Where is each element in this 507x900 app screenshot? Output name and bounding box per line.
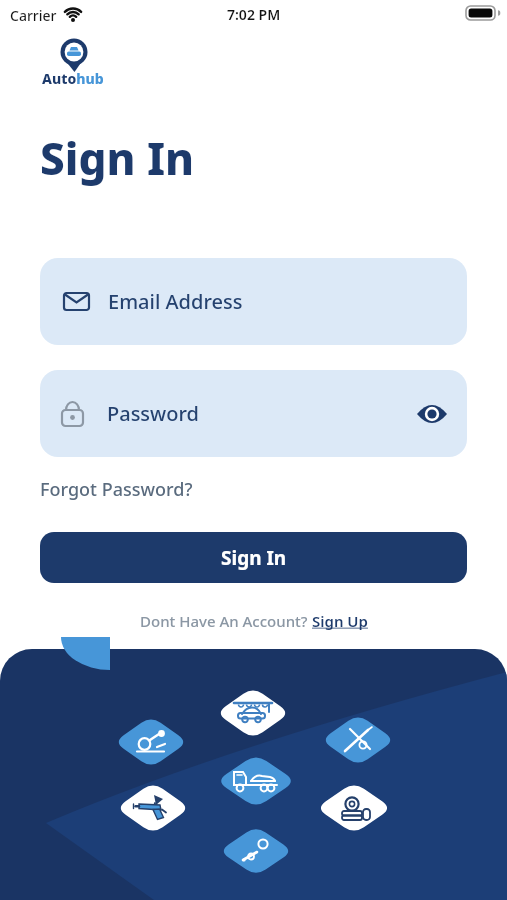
staticText: Sign Up [312,611,368,631]
staticText: 7:02 PM [227,5,281,24]
staticText: Password [107,400,199,427]
staticText: Email Address [108,288,243,315]
staticText: Dont Have An Account? [140,611,312,631]
button[interactable]: Sign In [40,532,467,583]
staticText: Carrier [10,6,57,25]
staticText: Sign In [221,545,287,571]
staticText: Forgot Password? [40,477,193,502]
button[interactable]: Password [40,370,467,457]
button[interactable]: Sign Up [312,611,368,631]
button[interactable]: Forgot Password? [40,477,193,502]
button[interactable] [417,402,449,426]
button[interactable]: Email Address [40,258,467,345]
staticText: Sign In [40,128,195,188]
staticText: Autohub [42,69,104,88]
